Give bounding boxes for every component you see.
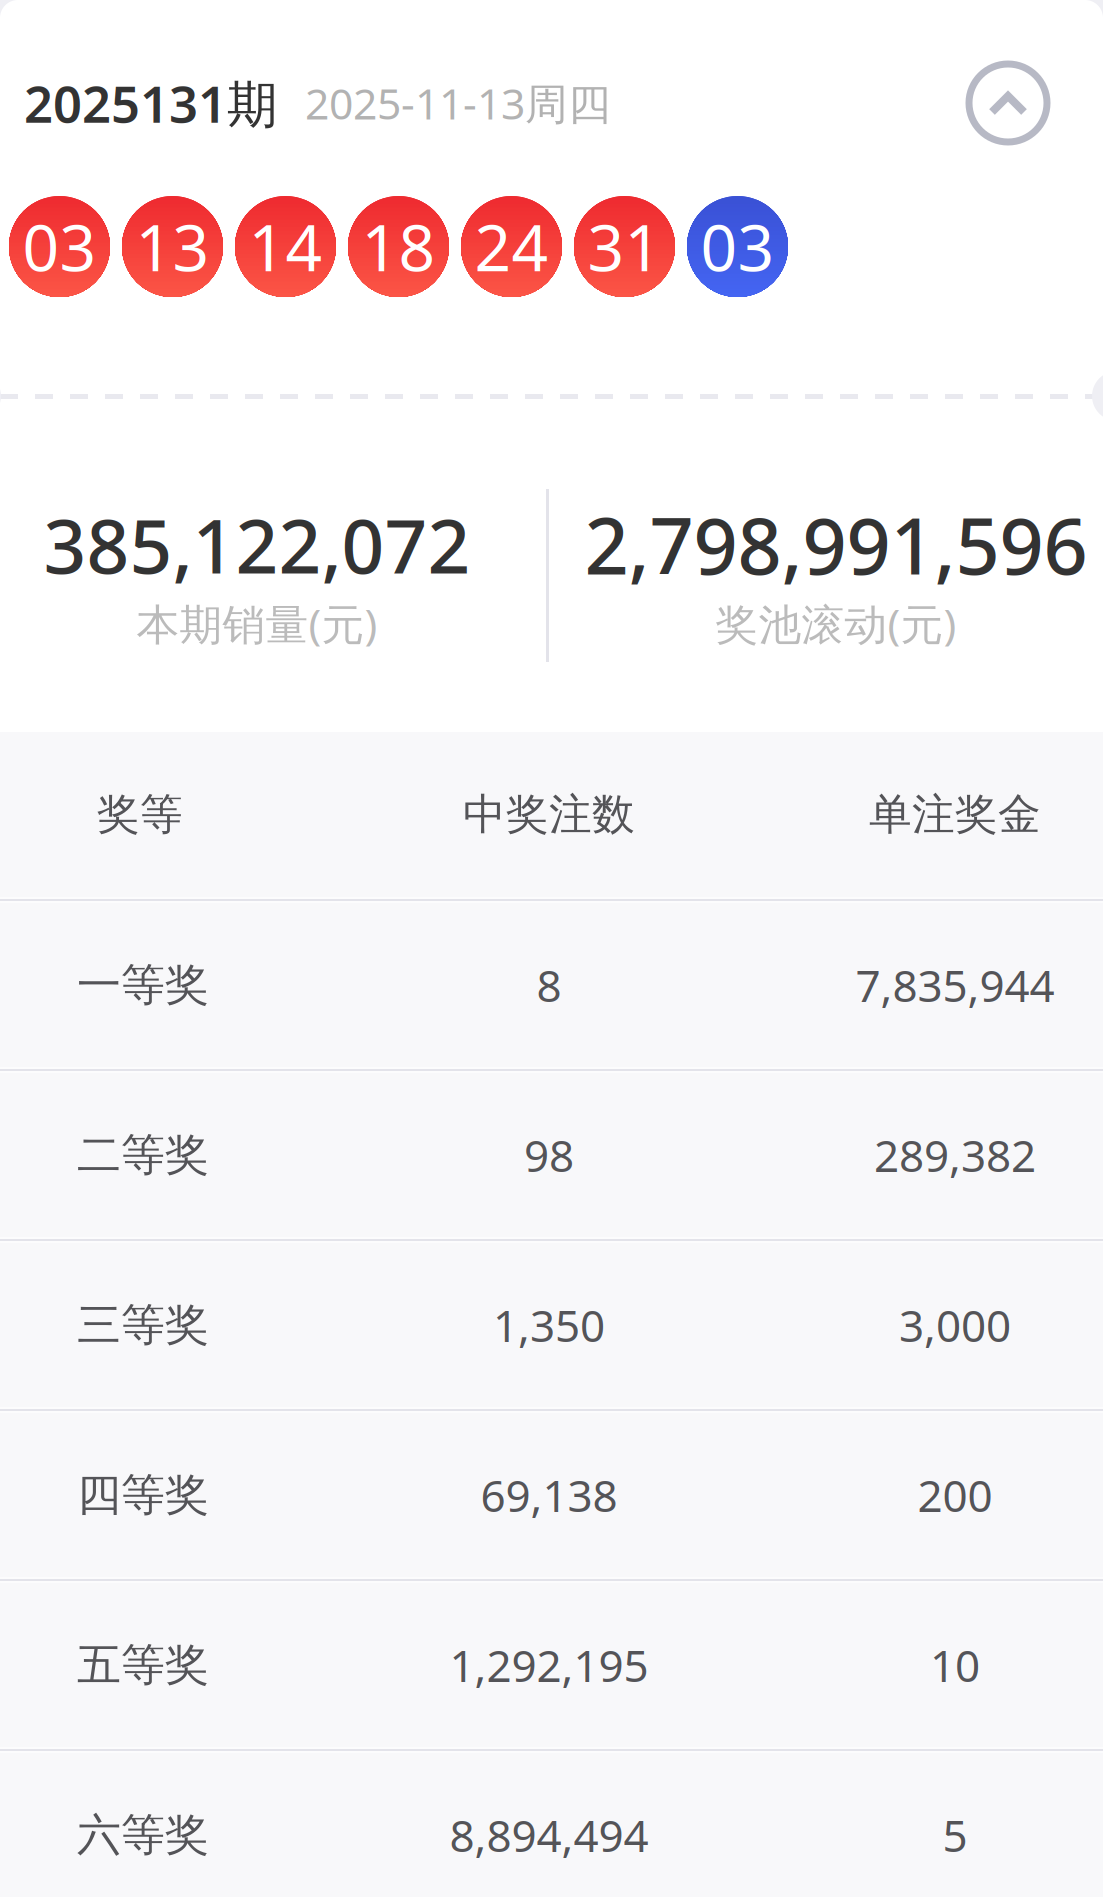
staticText: 单注奖金: [869, 788, 1041, 841]
button[interactable]: 五等奖: [0, 1583, 1103, 1747]
staticText: 8: [536, 956, 561, 1014]
staticText: 2,798,991,596: [584, 493, 1087, 596]
staticText: 31: [587, 204, 661, 289]
staticText: 5: [942, 1806, 967, 1864]
staticText: 2025131期: [24, 69, 278, 137]
staticText: 奖池滚动(元): [715, 595, 956, 652]
staticText: 69,138: [480, 1466, 617, 1524]
staticText: 8,894,494: [449, 1806, 648, 1864]
button[interactable]: 二等奖: [0, 1073, 1103, 1237]
staticText: 7,835,944: [855, 956, 1054, 1014]
staticText: 四等奖: [77, 1468, 209, 1522]
staticText: 18: [361, 204, 435, 289]
staticText: 200: [917, 1466, 992, 1524]
staticText: 二等奖: [77, 1128, 209, 1182]
staticText: 289,382: [874, 1126, 1036, 1184]
staticText: 1,350: [493, 1296, 605, 1354]
staticText: 385,122,072: [43, 495, 470, 594]
staticText: 本期销量(元): [136, 595, 377, 652]
staticText: 一等奖: [77, 958, 209, 1012]
staticText: 13: [135, 204, 209, 289]
button[interactable]: 六等奖: [0, 1753, 1103, 1897]
staticText: 03: [22, 204, 96, 289]
staticText: 1,292,195: [449, 1636, 648, 1694]
staticText: 10: [930, 1636, 980, 1694]
button[interactable]: 四等奖: [0, 1413, 1103, 1577]
staticText: 三等奖: [77, 1298, 209, 1352]
button[interactable]: 三等奖: [0, 1243, 1103, 1407]
staticText: 中奖注数: [463, 788, 635, 841]
staticText: 六等奖: [77, 1808, 209, 1862]
staticText: 五等奖: [77, 1638, 209, 1692]
staticText: 14: [248, 204, 322, 289]
button[interactable]: 一等奖: [0, 903, 1103, 1067]
staticText: 3,000: [899, 1296, 1011, 1354]
staticText: 24: [474, 204, 548, 289]
staticText: 2025-11-13周四: [305, 75, 611, 131]
staticText: 98: [524, 1126, 574, 1184]
button[interactable]: Collapse section: [963, 58, 1053, 148]
staticText: 03: [700, 204, 774, 289]
staticText: 奖等: [97, 788, 183, 841]
